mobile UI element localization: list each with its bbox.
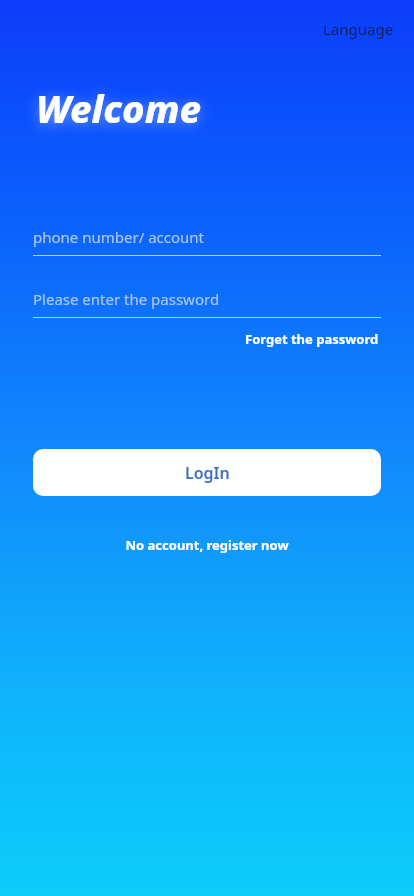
- staticText: LogIn: [185, 462, 230, 484]
- staticText: Language: [323, 19, 394, 39]
- button[interactable]: Forget the password: [243, 327, 381, 351]
- staticText: phone number/ account: [33, 227, 204, 247]
- staticText: Forget the password: [245, 330, 379, 348]
- staticText: Welcome: [36, 82, 201, 134]
- button[interactable]: phone number/ account: [33, 219, 381, 256]
- button[interactable]: Please enter the password: [33, 281, 381, 318]
- staticText: No account, register now: [125, 536, 289, 554]
- staticText: Please enter the password: [33, 289, 220, 309]
- button[interactable]: Language: [321, 16, 396, 42]
- button[interactable]: No account, register now: [119, 532, 295, 558]
- button[interactable]: LogIn: [33, 449, 381, 496]
